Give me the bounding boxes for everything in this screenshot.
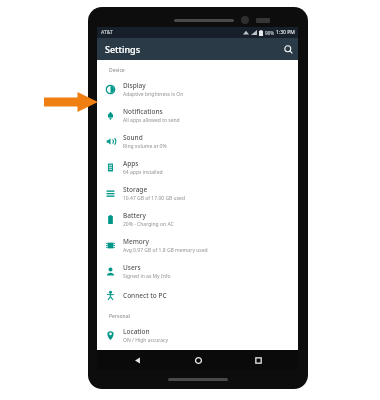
staticText: Sound — [123, 133, 143, 142]
button[interactable]: Notifications — [97, 102, 298, 128]
staticText: All apps allowed to send — [123, 117, 180, 124]
button[interactable]: Search — [278, 39, 298, 59]
staticText: Display — [123, 81, 146, 90]
staticText: 64 apps installed — [123, 169, 163, 176]
button[interactable]: Recent apps — [238, 350, 278, 370]
button[interactable]: Memory — [97, 232, 298, 258]
button[interactable]: Sound — [97, 128, 298, 154]
staticText: 98% — [265, 30, 274, 36]
staticText: 20% - Charging on AC — [123, 221, 174, 228]
staticText: Location — [123, 327, 150, 336]
staticText: Notifications — [123, 107, 163, 116]
staticText: Adaptive brightness is On — [123, 91, 184, 98]
staticText: Apps — [123, 159, 139, 168]
staticText: AT&T — [101, 29, 113, 36]
staticText: Memory — [123, 237, 150, 246]
staticText: Connect to PC — [123, 291, 167, 300]
button[interactable]: Home — [178, 350, 218, 370]
button[interactable]: Users — [97, 258, 298, 284]
staticText: Storage — [123, 185, 148, 194]
staticText: Ring volume at 0% — [123, 143, 167, 150]
staticText: Settings — [105, 43, 141, 55]
button[interactable]: Apps — [97, 154, 298, 180]
button[interactable]: Connect to PC — [97, 284, 298, 306]
staticText: Avg 0.97 GB of 1.8 GB memory used — [123, 247, 208, 254]
staticText: Battery — [123, 211, 146, 220]
staticText: 10.47 GB of 17.00 GB used — [123, 195, 185, 202]
staticText: Signed in as My Info — [123, 273, 171, 280]
staticText: Users — [123, 263, 141, 272]
staticText: 1:30 PM — [276, 29, 295, 36]
staticText: Device — [109, 67, 125, 74]
button[interactable]: Location — [97, 322, 298, 348]
button[interactable]: Display — [97, 76, 298, 102]
staticText: ON / High accuracy — [123, 337, 169, 344]
button[interactable]: Battery — [97, 206, 298, 232]
button[interactable]: Back — [117, 350, 157, 370]
staticText: Personal — [109, 313, 130, 320]
button[interactable]: Storage — [97, 180, 298, 206]
